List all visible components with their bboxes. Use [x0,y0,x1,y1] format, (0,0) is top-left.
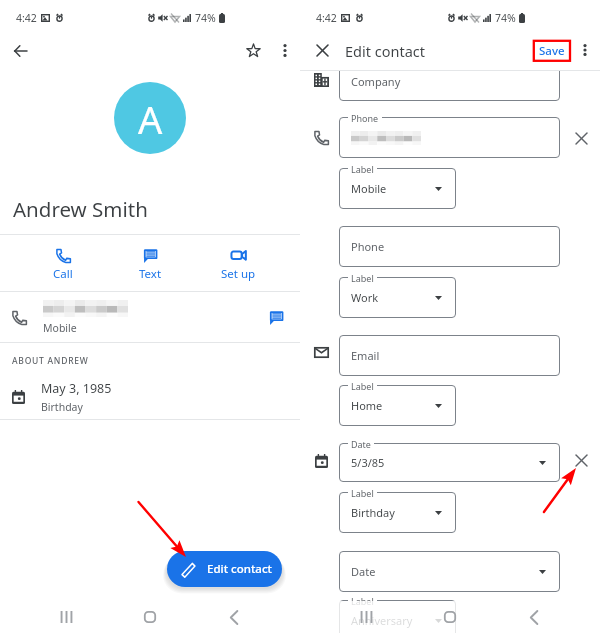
button[interactable]: Add to favourites [239,36,267,64]
staticText: Phone [351,112,379,123]
staticText: 5/3/85 [351,455,385,470]
button[interactable]: Mobile [0,292,300,342]
button[interactable]: Back [212,601,256,633]
button[interactable]: Home [128,601,172,633]
button[interactable]: Back [512,601,556,633]
staticText: Label [351,272,374,283]
staticText: Work [351,290,379,305]
staticText: Edit contact [345,41,425,61]
button[interactable]: Edit contact [167,551,282,587]
staticText: Date [351,564,376,579]
button[interactable] [339,385,456,426]
button[interactable] [339,168,456,209]
staticText: Label [351,163,374,174]
staticText: ABOUT ANDREW [12,355,89,367]
button[interactable] [339,335,560,376]
button[interactable]: More options [571,36,599,64]
button[interactable]: More options [271,36,299,64]
button[interactable]: Remove date [566,445,596,475]
staticText: A [138,93,163,145]
staticText: 4:42 [316,11,337,25]
button[interactable]: Home [428,601,472,633]
button[interactable] [339,226,560,267]
staticText: Anniversary [351,613,413,628]
staticText: 74% [495,11,516,25]
button[interactable] [339,117,560,158]
button[interactable]: Text [112,236,188,290]
button[interactable]: Close [309,37,335,63]
button[interactable]: Remove phone [566,123,596,153]
button[interactable]: Call [25,236,101,290]
button[interactable] [339,443,560,482]
button[interactable]: A [114,82,186,154]
staticText: Andrew Smith [13,195,148,223]
staticText: Set up [221,266,256,282]
staticText: Home [351,398,383,413]
staticText: Mobile [351,181,387,196]
staticText: Save [539,43,565,59]
button[interactable] [339,551,560,592]
staticText: May 3, 1985 [41,380,112,397]
button[interactable] [339,277,456,318]
staticText: Edit contact [207,561,272,577]
button[interactable]: May 3, 1985 [0,376,300,418]
button[interactable]: Recent apps [44,601,88,633]
staticText: Text [139,266,162,282]
button[interactable]: Recent apps [344,601,388,633]
staticText: Label [351,380,374,391]
staticText: Mobile [43,321,77,335]
staticText: Label [351,487,374,498]
button[interactable]: Send message [261,302,291,332]
staticText: Birthday [351,505,395,520]
staticText: Label [351,595,374,606]
button[interactable]: Set up [200,236,276,290]
staticText: Phone [351,239,385,254]
staticText: Date [351,438,371,449]
button[interactable]: Save [533,41,571,61]
staticText: Company [351,74,401,89]
button[interactable] [339,492,456,533]
staticText: Call [53,266,73,282]
button[interactable] [339,71,560,101]
staticText: 4:42 [16,11,37,25]
button[interactable] [339,600,456,633]
staticText: Birthday [41,400,83,414]
button[interactable]: Back [7,37,34,64]
staticText: Email [351,348,380,363]
staticText: 74% [195,11,216,25]
